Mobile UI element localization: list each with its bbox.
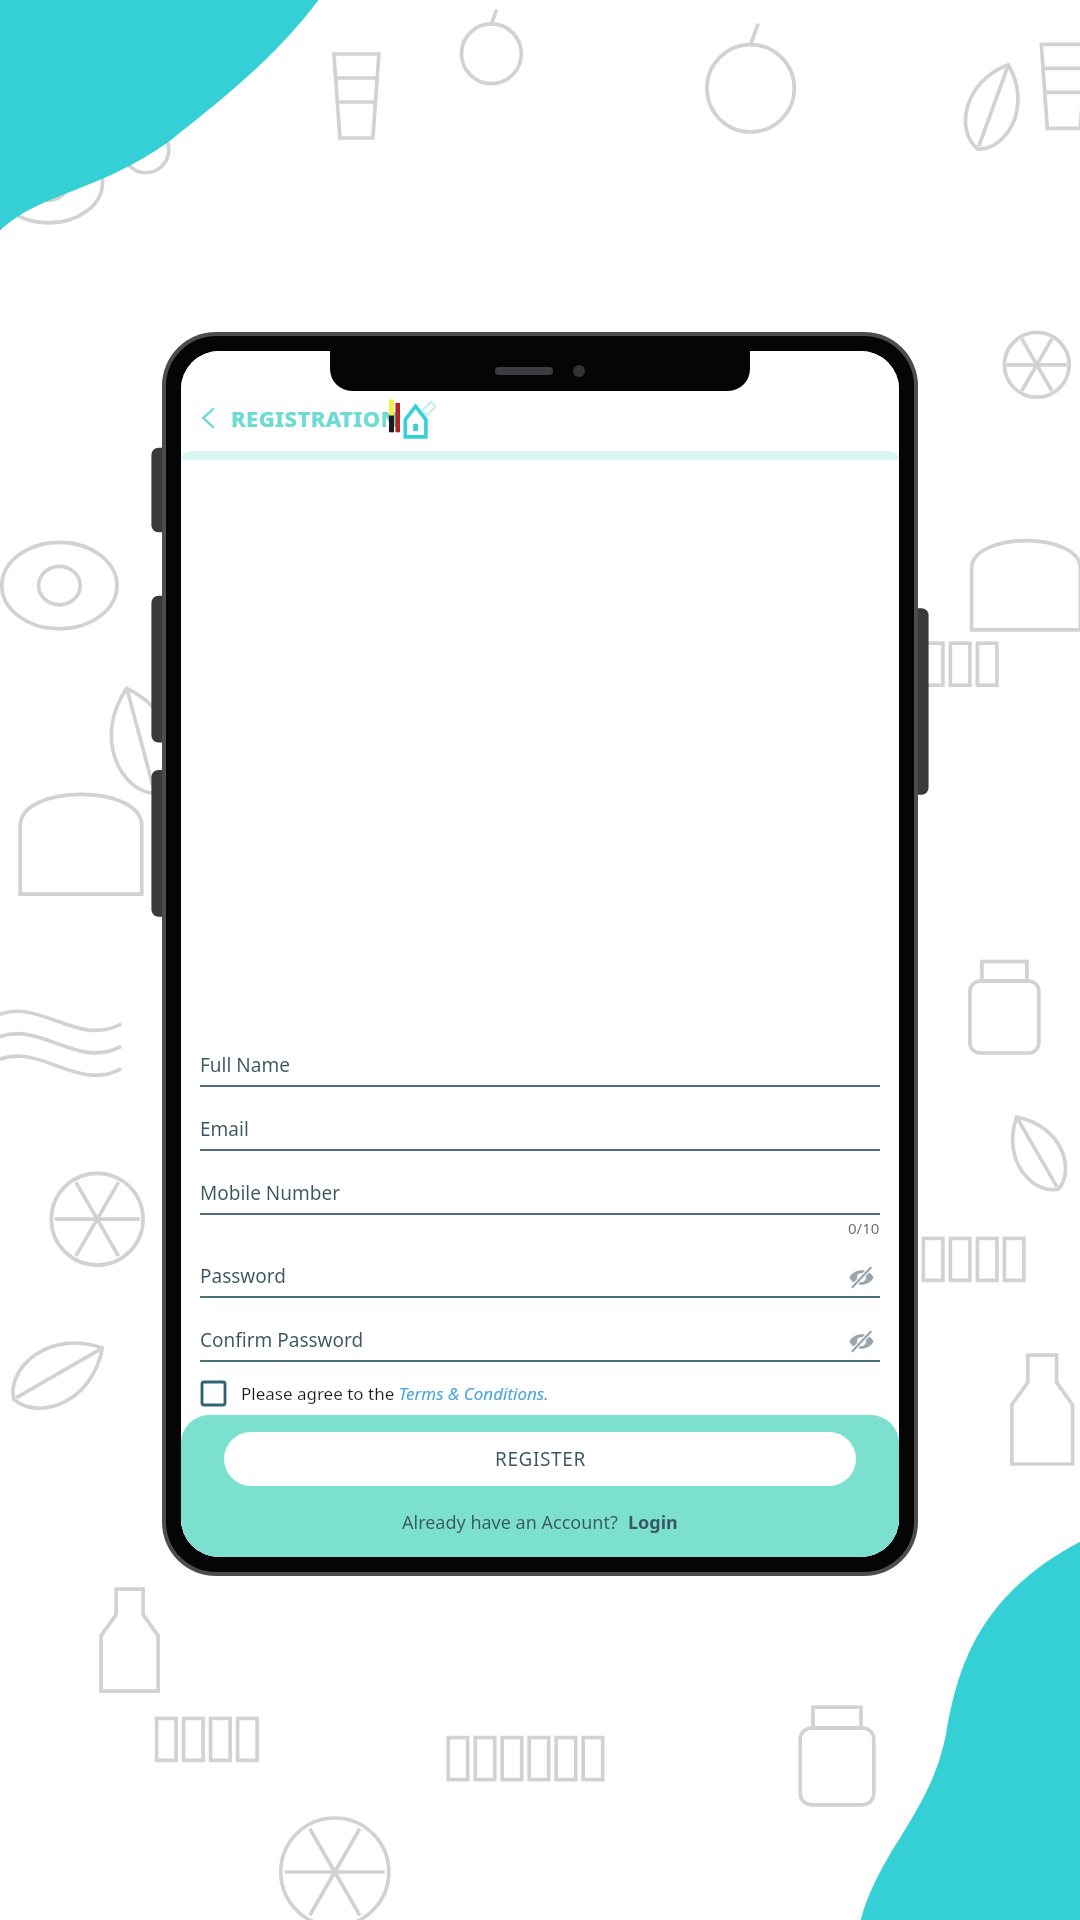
button[interactable]: Full Name <box>200 1029 880 1087</box>
staticText: REGISTER <box>495 1446 586 1472</box>
button[interactable]: Please agree to the Terms & Conditions. <box>200 1380 880 1407</box>
staticText: 0/10 <box>848 1218 880 1238</box>
staticText: Confirm Password <box>200 1327 364 1353</box>
staticText: Please agree to the Terms & Conditions. <box>241 1382 549 1405</box>
button[interactable]: Confirm Password <box>200 1304 880 1362</box>
button[interactable]: Mobile Number <box>200 1157 880 1215</box>
staticText: Login <box>628 1510 678 1535</box>
staticText: Email <box>200 1116 249 1142</box>
button[interactable]: Already have an Account? <box>402 1510 678 1535</box>
staticText: Password <box>200 1263 286 1289</box>
button[interactable]: Show password <box>842 1322 880 1360</box>
button[interactable]: Back <box>189 398 229 438</box>
button[interactable]: Password <box>200 1240 880 1298</box>
button[interactable]: Email <box>200 1093 880 1151</box>
staticText: Already have an Account? <box>402 1510 628 1535</box>
button[interactable]: Show password <box>842 1258 880 1296</box>
staticText: Full Name <box>200 1052 290 1078</box>
staticText: Mobile Number <box>200 1180 341 1206</box>
staticText: REGISTRATION <box>231 403 400 433</box>
button[interactable]: REGISTER <box>224 1432 856 1486</box>
